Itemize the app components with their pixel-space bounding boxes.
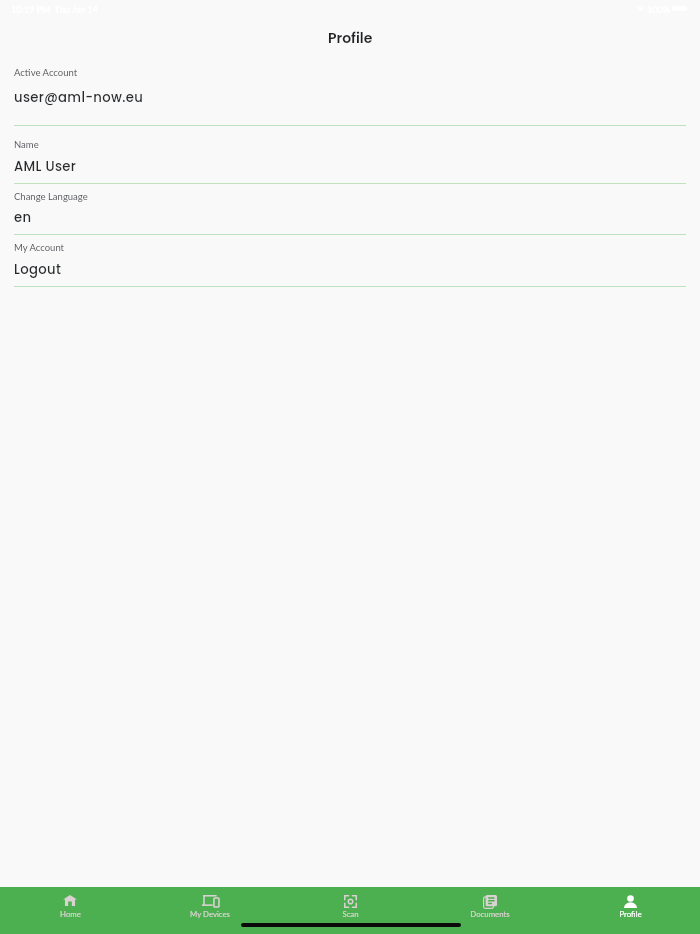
- staticText: Documents: [470, 909, 510, 918]
- staticText: AML User: [14, 157, 77, 175]
- staticText: My Devices: [190, 909, 230, 918]
- staticText: en: [14, 208, 32, 226]
- staticText: Profile: [619, 909, 642, 918]
- button[interactable]: Change Language: [0, 183, 700, 235]
- button[interactable]: Home: [0, 887, 140, 934]
- button[interactable]: Scan: [280, 887, 420, 934]
- staticText: Scan: [342, 909, 359, 918]
- staticText: Active Account: [14, 67, 78, 78]
- staticText: Home: [60, 909, 81, 918]
- staticText: Logout: [14, 260, 62, 278]
- button[interactable]: Active Account: [0, 53, 700, 126]
- button[interactable]: My Devices: [140, 887, 280, 934]
- staticText: Profile: [328, 28, 373, 48]
- staticText: Name: [14, 139, 39, 150]
- button[interactable]: My Account: [0, 234, 700, 287]
- button[interactable]: Documents: [420, 887, 560, 934]
- button[interactable]: Name: [0, 125, 700, 184]
- button[interactable]: Profile: [560, 887, 700, 934]
- staticText: user@aml-now.eu: [14, 88, 144, 106]
- staticText: My Account: [14, 242, 65, 253]
- staticText: Change Language: [14, 191, 88, 202]
